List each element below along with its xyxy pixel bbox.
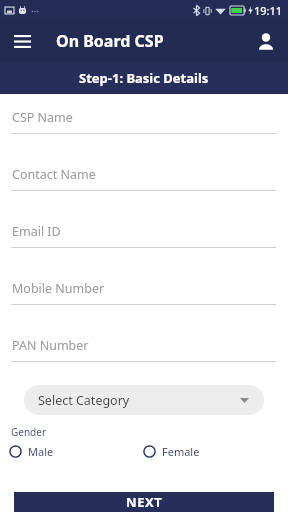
button[interactable]: Account	[250, 25, 282, 57]
button[interactable]: PAN Number	[0, 337, 288, 362]
button[interactable]: NEXT	[14, 492, 274, 512]
button[interactable]: Select Category	[24, 385, 264, 415]
staticText: Select Category	[38, 392, 130, 409]
staticText: Email ID	[12, 223, 61, 240]
staticText: Contact Name	[12, 166, 96, 183]
staticText: NEXT	[126, 493, 163, 511]
button[interactable]: Female	[143, 444, 200, 459]
staticText: Gender	[11, 425, 47, 439]
staticText: CSP Name	[12, 109, 73, 126]
button[interactable]: Male	[9, 444, 54, 459]
button[interactable]: Email ID	[0, 223, 288, 248]
staticText: Step-1: Basic Details	[79, 69, 209, 87]
staticText: Female	[162, 444, 200, 459]
staticText: 19:11	[254, 3, 283, 18]
button[interactable]: Mobile Number	[0, 280, 288, 305]
staticText: On Board CSP	[56, 30, 164, 52]
staticText: Mobile Number	[12, 280, 105, 297]
button[interactable]: Contact Name	[0, 166, 288, 191]
button[interactable]: Open navigation menu	[6, 25, 38, 57]
staticText: PAN Number	[12, 337, 89, 354]
staticText: Male	[28, 444, 54, 459]
button[interactable]: CSP Name	[0, 109, 288, 134]
